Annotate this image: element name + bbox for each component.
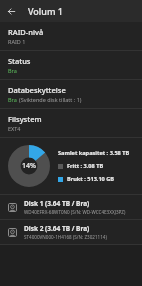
staticText: Bra [8, 67, 17, 74]
staticText: 14% [22, 161, 36, 171]
staticText: Samlet kapasitet : 3.58 TB [58, 149, 130, 157]
staticText: Bra [8, 96, 17, 103]
staticText: Fritt : 3.08 TB [67, 162, 104, 170]
button[interactable]: RAID-nivå [0, 22, 142, 50]
button[interactable]: Databeskyttelse [0, 80, 142, 108]
staticText: Disk 2 (3.64 TB / Bra) [24, 224, 90, 233]
staticText: Brukt : 513.10 GB [67, 175, 115, 183]
button[interactable]: Disk 2 (3.64 TB / Bra) [0, 220, 142, 244]
staticText: EXT4 [8, 125, 21, 132]
staticText: Volum 1 [28, 5, 63, 17]
button[interactable]: Status [0, 51, 142, 79]
staticText: RAID 1 [8, 38, 26, 45]
staticText: (Sviktende disk tillatt : 1) [19, 96, 82, 103]
staticText: ST4000VN000-1H4168 (S/N: Z3021114) [24, 234, 107, 240]
staticText: Disk 1 (3.64 TB / Bra) [24, 199, 90, 208]
button[interactable]: Disk 1 (3.64 TB / Bra) [0, 195, 142, 219]
staticText: WD40EFRX-68WT0N0 (S/N: WD-WCC4E3XXJ3PZ) [24, 209, 126, 215]
staticText: Status [8, 56, 31, 66]
button[interactable]: Filsystem [0, 109, 142, 137]
staticText: Databeskyttelse [8, 85, 66, 95]
button[interactable]: Back [0, 0, 22, 22]
staticText: Filsystem [8, 114, 42, 124]
staticText: RAID-nivå [8, 27, 44, 37]
